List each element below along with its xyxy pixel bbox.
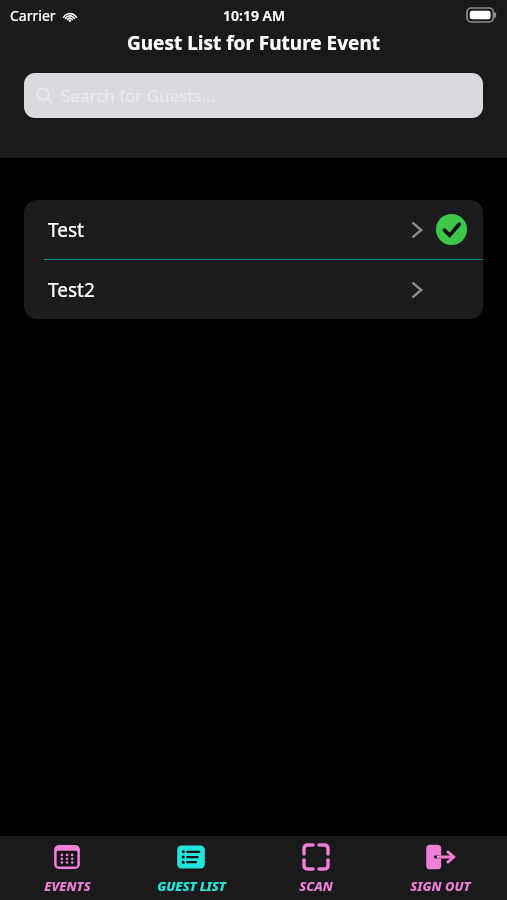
button[interactable]: Guest List [133, 838, 249, 899]
other: Sign Out [425, 842, 455, 872]
staticText: 10:19 AM [223, 6, 285, 25]
other: Events [52, 842, 82, 872]
staticText: Guest List for Future Event [0, 30, 507, 56]
button[interactable]: Test2 [24, 260, 483, 319]
button[interactable]: Sign Out [382, 838, 498, 899]
staticText: Test [48, 217, 84, 243]
staticText: EVENTS [44, 877, 91, 895]
button[interactable]: Scan [258, 838, 374, 899]
staticText: SCAN [299, 877, 333, 895]
staticText: GUEST LIST [157, 877, 226, 895]
staticText: Test2 [48, 277, 95, 303]
staticText: SIGN OUT [410, 877, 471, 895]
other: Scan [301, 842, 331, 872]
staticText: Carrier [10, 6, 56, 25]
button[interactable]: Test [24, 200, 483, 259]
button[interactable]: Search for Guests... [24, 73, 483, 118]
staticText: Search for Guests... [61, 84, 216, 107]
button[interactable]: Events [9, 838, 125, 899]
other: Guest List [176, 842, 206, 872]
